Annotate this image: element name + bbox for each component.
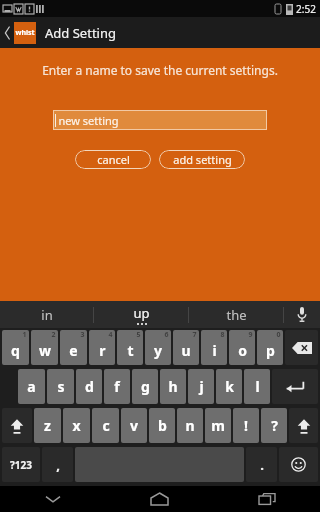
staticText: 0 <box>276 330 281 340</box>
button[interactable]: a <box>18 369 45 404</box>
staticText: ? <box>271 416 278 435</box>
button[interactable]: add setting <box>159 150 245 169</box>
staticText: a <box>27 377 36 396</box>
button[interactable]: Recent apps <box>213 486 320 512</box>
button[interactable]: Shift <box>2 408 32 443</box>
button[interactable]: Home <box>106 486 213 512</box>
button[interactable]: r <box>89 330 115 365</box>
staticText: 3 <box>80 330 85 340</box>
button[interactable]: d <box>76 369 102 404</box>
staticText: 7 <box>192 330 197 340</box>
staticText: k <box>225 377 234 396</box>
button[interactable]: c <box>92 408 119 443</box>
button[interactable]: whist <box>14 22 36 44</box>
staticText: q <box>11 341 20 360</box>
staticText: z <box>44 416 51 435</box>
button[interactable]: t <box>117 330 143 365</box>
staticText: 2 <box>51 330 56 340</box>
staticText: b <box>158 416 167 435</box>
staticText: o <box>238 341 247 360</box>
staticText: j <box>199 377 204 396</box>
staticText: 2:52 <box>296 2 316 16</box>
staticText: v <box>130 416 138 435</box>
button[interactable]: o <box>229 330 255 365</box>
button[interactable]: ? <box>261 408 287 443</box>
staticText: 1 <box>22 330 27 340</box>
staticText: r <box>99 341 106 360</box>
button[interactable]: in <box>0 301 93 328</box>
staticText: i <box>212 341 217 360</box>
button[interactable]: n <box>177 408 203 443</box>
staticText: 9 <box>248 330 253 340</box>
button[interactable]: p <box>257 330 283 365</box>
button[interactable]: new setting <box>53 110 267 130</box>
staticText: n <box>185 416 195 435</box>
staticText: u <box>181 341 191 360</box>
staticText: new setting <box>58 113 119 128</box>
staticText: Enter a name to save the current setting… <box>42 62 278 78</box>
staticText: 5 <box>136 330 141 340</box>
staticText: , <box>56 456 60 474</box>
button[interactable]: Enter <box>272 369 318 404</box>
staticText: y <box>154 341 162 360</box>
staticText: ?123 <box>10 458 32 472</box>
staticText: 4 <box>108 330 113 340</box>
staticText: c <box>102 416 110 435</box>
staticText: l <box>255 377 260 396</box>
staticText: d <box>85 377 94 396</box>
staticText: Add Setting <box>45 24 116 42</box>
staticText: whist <box>15 28 35 38</box>
button[interactable]: the <box>189 301 283 328</box>
button[interactable]: Shift <box>289 408 318 443</box>
button[interactable]: u <box>173 330 199 365</box>
button[interactable]: y <box>145 330 171 365</box>
staticText: p <box>266 341 275 360</box>
button[interactable]: ?123 <box>2 447 40 482</box>
button[interactable]: g <box>132 369 158 404</box>
button[interactable]: j <box>188 369 214 404</box>
button[interactable]: w <box>31 330 58 365</box>
button[interactable]: x <box>63 408 90 443</box>
staticText: 6 <box>164 330 169 340</box>
button[interactable]: Backspace <box>285 330 318 365</box>
staticText: t <box>127 341 134 360</box>
button[interactable]: Emoji <box>279 447 318 482</box>
button[interactable]: f <box>104 369 130 404</box>
staticText: x <box>72 416 81 435</box>
staticText: in <box>41 306 53 324</box>
button[interactable]: k <box>216 369 242 404</box>
staticText: h <box>168 377 178 396</box>
button[interactable]: s <box>47 369 74 404</box>
button[interactable]: b <box>149 408 175 443</box>
button[interactable]: e <box>60 330 87 365</box>
staticText: add setting <box>173 152 232 167</box>
button[interactable]: h <box>160 369 186 404</box>
button[interactable]: l <box>244 369 270 404</box>
button[interactable]: ! <box>233 408 259 443</box>
staticText: w <box>39 341 51 360</box>
staticText: g <box>141 377 150 396</box>
button[interactable]: m <box>205 408 231 443</box>
button[interactable]: up <box>94 301 188 328</box>
button[interactable]: q <box>2 330 29 365</box>
staticText: f <box>114 377 120 396</box>
button[interactable]: Hide keyboard <box>0 486 106 512</box>
staticText: up <box>133 304 150 322</box>
button[interactable]: Voice input <box>284 301 320 328</box>
button[interactable]: Back <box>0 17 14 48</box>
staticText: cancel <box>97 152 130 167</box>
button[interactable]: cancel <box>75 150 151 169</box>
button[interactable]: z <box>34 408 61 443</box>
staticText: m <box>211 416 225 435</box>
staticText: the <box>226 306 247 324</box>
button[interactable]: i <box>201 330 227 365</box>
staticText: s <box>57 377 65 396</box>
button[interactable]: , <box>42 447 73 482</box>
staticText: . <box>260 456 264 474</box>
staticText: e <box>69 341 78 360</box>
staticText: 8 <box>220 330 225 340</box>
button[interactable]: . <box>246 447 277 482</box>
staticText: ! <box>244 416 248 435</box>
button[interactable]: v <box>121 408 147 443</box>
